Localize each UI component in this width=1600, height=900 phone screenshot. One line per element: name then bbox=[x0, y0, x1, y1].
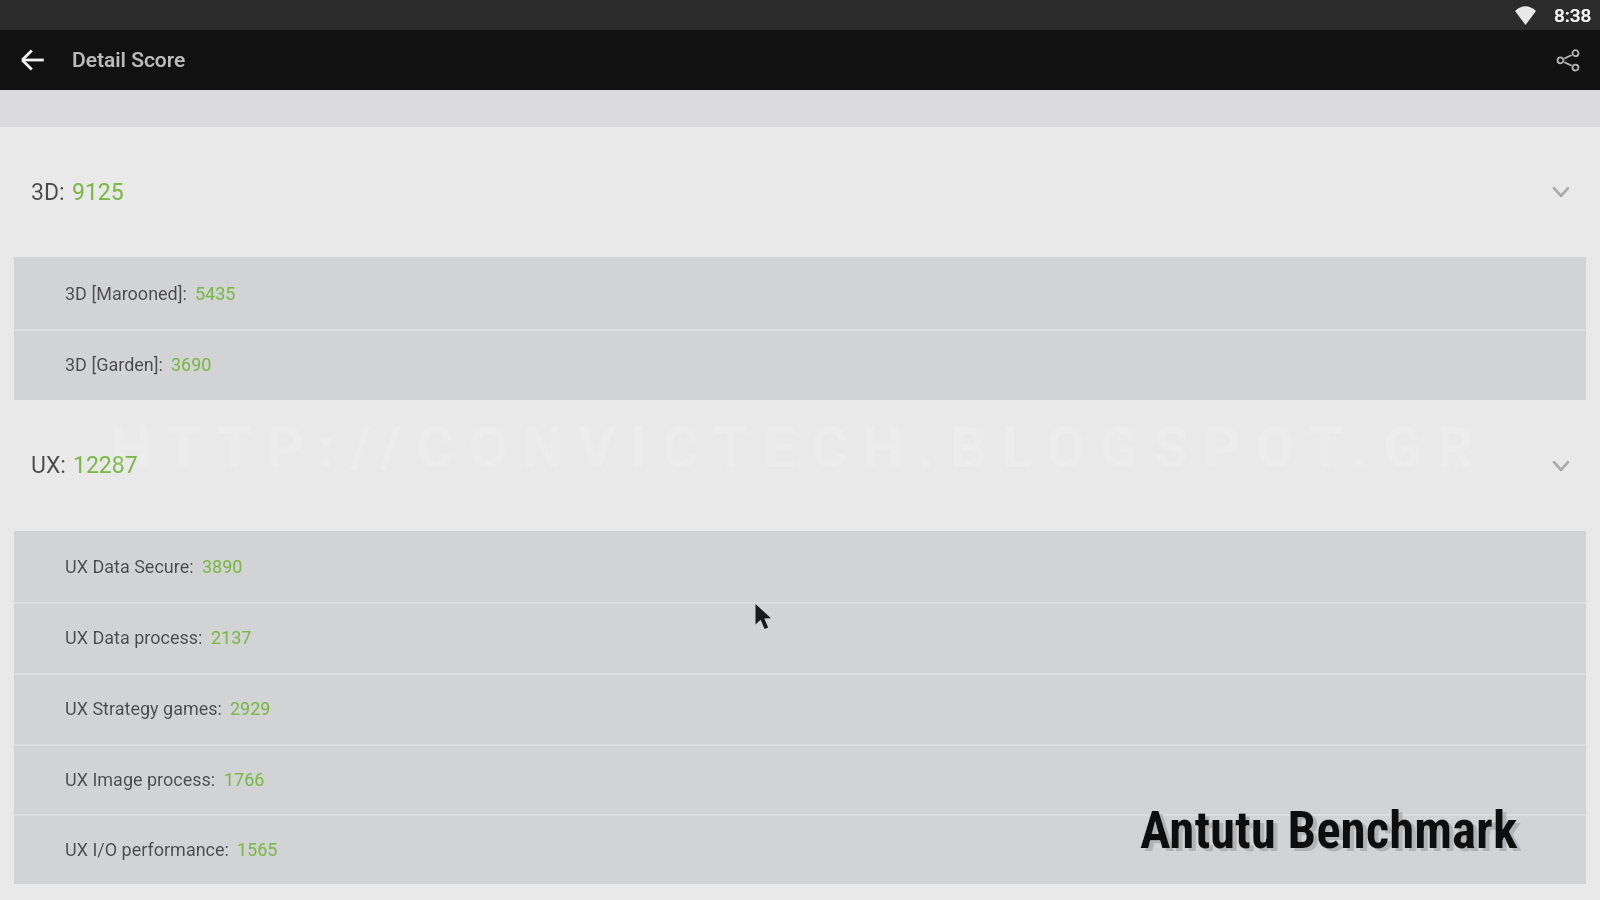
button[interactable]: Share bbox=[1543, 35, 1593, 85]
staticText: 9125 bbox=[72, 179, 124, 206]
staticText: 2137 bbox=[211, 627, 252, 648]
staticText: UX Strategy games: bbox=[65, 698, 222, 719]
staticText: UX: bbox=[31, 452, 66, 479]
button[interactable]: UX Data Secure: bbox=[14, 531, 1586, 602]
staticText: UX Image process: bbox=[65, 769, 216, 790]
button[interactable]: 3D [Marooned]: bbox=[14, 257, 1586, 329]
staticText: UX Data Secure: bbox=[65, 556, 194, 577]
button[interactable]: UX: bbox=[0, 400, 1600, 531]
button[interactable]: UX Image process: bbox=[14, 744, 1586, 814]
staticText: Antutu Benchmark bbox=[1144, 804, 1522, 864]
staticText: 3D [Garden]: bbox=[65, 354, 163, 375]
button[interactable]: Back bbox=[8, 35, 58, 85]
staticText: 1766 bbox=[224, 769, 265, 790]
staticText: 3690 bbox=[171, 354, 212, 375]
button[interactable]: UX Data process: bbox=[14, 602, 1586, 673]
button[interactable]: Expand bbox=[1544, 175, 1578, 209]
staticText: 3890 bbox=[202, 556, 243, 577]
button[interactable]: UX Strategy games: bbox=[14, 673, 1586, 744]
staticText: UX I/O performance: bbox=[65, 839, 229, 860]
staticText: 2929 bbox=[230, 698, 271, 719]
staticText: Detail Score bbox=[72, 48, 186, 73]
staticText: 8:38 bbox=[1554, 4, 1592, 26]
button[interactable]: Expand bbox=[1544, 449, 1578, 483]
staticText: 12287 bbox=[73, 452, 138, 479]
staticText: UX Data process: bbox=[65, 627, 203, 648]
button[interactable]: 3D: bbox=[0, 127, 1600, 257]
staticText: 3D: bbox=[31, 179, 65, 206]
staticText: 5435 bbox=[195, 283, 236, 304]
button[interactable]: UX I/O performance: bbox=[14, 814, 1586, 884]
staticText: 3D [Marooned]: bbox=[65, 283, 187, 304]
staticText: HTTP://CONVICTECH.BLOGSPOT.GR bbox=[112, 415, 1489, 481]
button[interactable]: 3D [Garden]: bbox=[14, 329, 1586, 400]
staticText: 1565 bbox=[237, 839, 278, 860]
staticText: Antutu Benchmark bbox=[1140, 801, 1518, 861]
